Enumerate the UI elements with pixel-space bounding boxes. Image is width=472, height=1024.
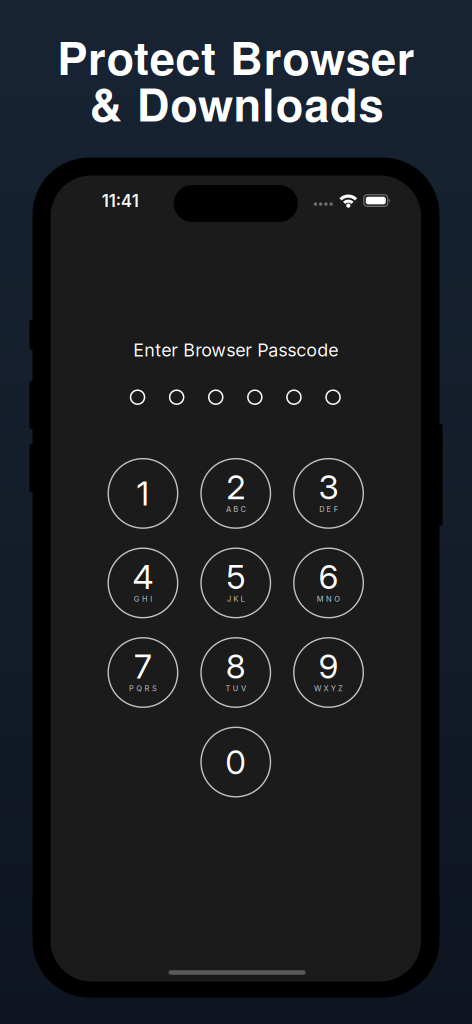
staticText: Q bbox=[136, 684, 142, 693]
button[interactable]: 6 bbox=[294, 548, 363, 618]
staticText: T bbox=[225, 684, 230, 693]
staticText: P bbox=[129, 684, 134, 693]
staticText: J bbox=[227, 594, 231, 603]
staticText: B bbox=[233, 505, 238, 514]
staticText: 1 bbox=[136, 473, 149, 513]
staticText: S bbox=[152, 684, 157, 693]
staticText: K bbox=[233, 594, 238, 603]
staticText: 9 bbox=[319, 646, 339, 686]
staticText: 11:41 bbox=[102, 191, 139, 211]
staticText: M bbox=[317, 594, 324, 603]
staticText: 0 bbox=[225, 742, 246, 782]
staticText: 2 bbox=[226, 467, 245, 507]
staticText: Enter Browser Passcode bbox=[133, 339, 338, 361]
staticText: 4 bbox=[132, 557, 153, 597]
staticText: N bbox=[326, 594, 332, 603]
staticText: Z bbox=[338, 684, 343, 693]
staticText: F bbox=[334, 505, 338, 514]
staticText: W bbox=[314, 684, 321, 693]
button[interactable]: 9 bbox=[294, 638, 363, 707]
button[interactable]: 5 bbox=[201, 548, 270, 618]
button[interactable]: 2 bbox=[201, 459, 270, 528]
button[interactable]: 0 bbox=[201, 727, 270, 797]
staticText: D bbox=[319, 505, 324, 514]
button[interactable]: 4 bbox=[108, 548, 178, 618]
staticText: 6 bbox=[319, 557, 339, 597]
staticText: 5 bbox=[226, 557, 245, 597]
staticText: X bbox=[323, 684, 328, 693]
button[interactable]: 1 bbox=[108, 459, 178, 528]
button[interactable]: 7 bbox=[108, 638, 178, 707]
staticText: Y bbox=[331, 684, 336, 693]
staticText: 7 bbox=[134, 646, 152, 686]
staticText: E bbox=[327, 505, 332, 514]
staticText: & Downloads bbox=[89, 70, 383, 135]
staticText: 8 bbox=[226, 646, 246, 686]
staticText: Protect Browser bbox=[57, 24, 415, 89]
button[interactable]: 3 bbox=[294, 459, 363, 528]
staticText: 3 bbox=[319, 467, 339, 507]
staticText: G bbox=[134, 594, 140, 603]
staticText: A bbox=[226, 505, 231, 514]
staticText: U bbox=[233, 684, 239, 693]
button[interactable]: 8 bbox=[201, 638, 270, 707]
staticText: I bbox=[150, 594, 152, 603]
staticText: H bbox=[142, 594, 148, 603]
staticText: C bbox=[240, 505, 245, 514]
staticText: L bbox=[240, 594, 244, 603]
staticText: V bbox=[241, 684, 246, 693]
staticText: R bbox=[145, 684, 150, 693]
staticText: O bbox=[334, 594, 340, 603]
